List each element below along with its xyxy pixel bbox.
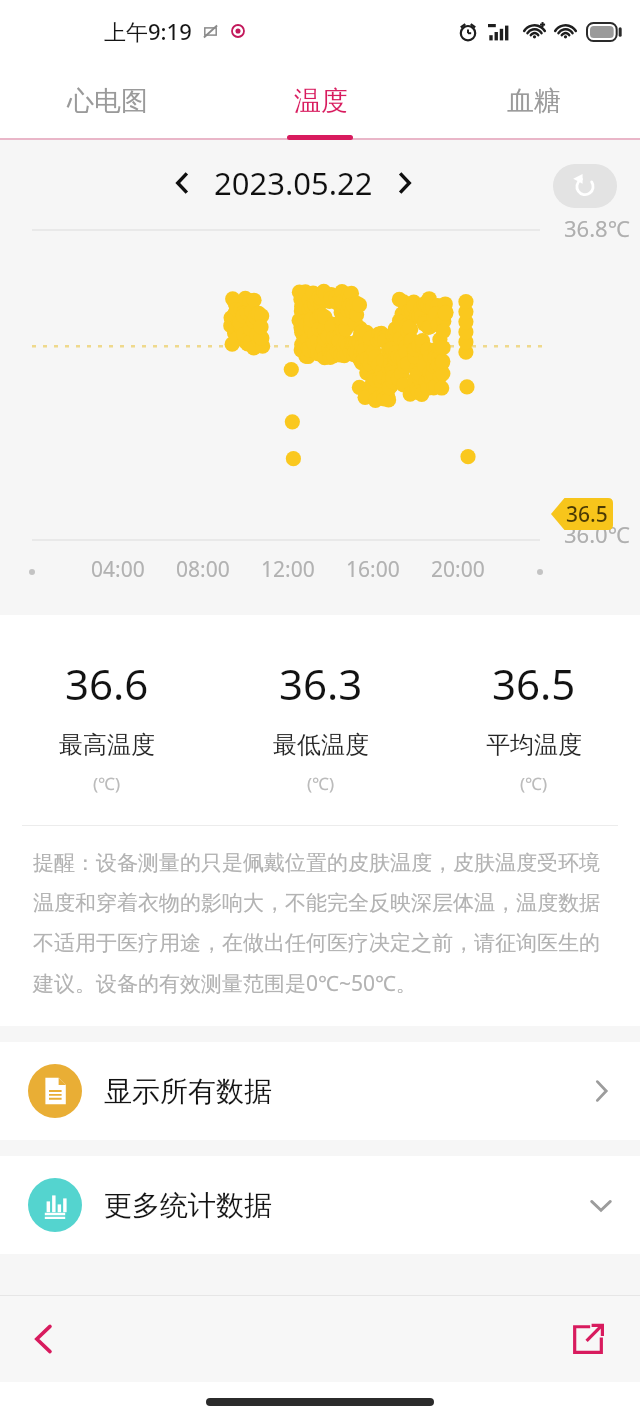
staticText: (℃): [307, 772, 335, 795]
staticText: 36.3: [279, 655, 363, 712]
staticText: 36.6: [65, 655, 149, 712]
staticText: (℃): [93, 772, 121, 795]
staticText: 16:00: [346, 555, 400, 584]
button[interactable]: 心电图: [0, 62, 214, 140]
staticText: 血糖: [507, 84, 561, 118]
staticText: 平均温度: [486, 730, 582, 760]
button[interactable]: 显示所有数据: [0, 1042, 640, 1140]
staticText: 08:00: [176, 555, 230, 584]
staticText: 上午9:19: [104, 16, 192, 46]
staticText: 20:00: [431, 555, 485, 584]
button[interactable]: 血糖: [427, 62, 640, 140]
button[interactable]: Share: [558, 1309, 618, 1369]
staticText: 36.5: [492, 655, 576, 712]
button[interactable]: 更多统计数据: [0, 1156, 640, 1254]
staticText: 04:00: [91, 555, 145, 584]
button[interactable]: 温度: [214, 62, 427, 140]
button[interactable]: Back: [14, 1309, 74, 1369]
staticText: 36.0℃: [564, 519, 630, 549]
staticText: 12:00: [261, 555, 315, 584]
staticText: 温度: [294, 84, 348, 118]
staticText: 最高温度: [59, 730, 155, 760]
staticText: 显示所有数据: [104, 1074, 272, 1109]
button[interactable]: Previous day: [158, 158, 208, 208]
staticText: 心电图: [67, 84, 148, 118]
staticText: 最低温度: [273, 730, 369, 760]
staticText: 2023.05.22: [214, 162, 373, 204]
staticText: 提醒：设备测量的只是佩戴位置的皮肤温度，皮肤温度受环境温度和穿着衣物的影响大，不…: [33, 850, 612, 998]
button[interactable]: Next day: [379, 158, 429, 208]
staticText: 36.5: [566, 500, 608, 529]
button[interactable]: Reset chart: [553, 164, 617, 208]
staticText: (℃): [520, 772, 548, 795]
staticText: 36.8℃: [564, 213, 630, 243]
staticText: 更多统计数据: [104, 1188, 272, 1223]
